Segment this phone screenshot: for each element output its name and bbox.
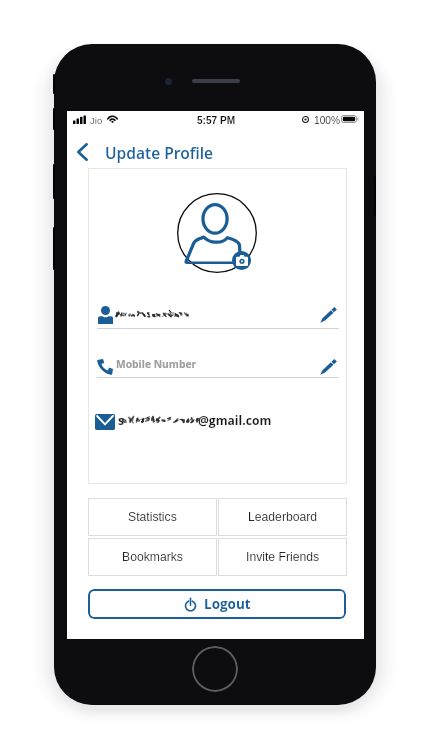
button[interactable]: Bookmarks bbox=[88, 538, 217, 576]
staticText: Logout bbox=[204, 595, 251, 613]
staticText: Jio bbox=[90, 115, 103, 126]
button[interactable]: Change profile photo bbox=[232, 251, 251, 270]
staticText: Leaderboard bbox=[248, 510, 318, 524]
button[interactable]: Back bbox=[69, 138, 95, 165]
button[interactable]: Edit bbox=[317, 355, 340, 378]
staticText: s bbox=[118, 412, 125, 428]
staticText: 100% bbox=[314, 115, 341, 126]
staticText: Bookmarks bbox=[122, 550, 183, 564]
staticText: 5:57 PM bbox=[197, 115, 236, 126]
staticText: Mobile Number bbox=[116, 357, 197, 371]
staticText: Update Profile bbox=[105, 142, 214, 163]
button[interactable]: Invite Friends bbox=[218, 538, 347, 576]
staticText: @gmail.com bbox=[198, 412, 272, 428]
button[interactable]: Leaderboard bbox=[218, 498, 347, 536]
button[interactable]: Logout bbox=[88, 589, 346, 619]
button[interactable]: Statistics bbox=[88, 498, 217, 536]
button[interactable] bbox=[96, 300, 339, 330]
button[interactable]: Edit bbox=[317, 303, 340, 326]
button[interactable] bbox=[96, 408, 339, 438]
staticText: Invite Friends bbox=[246, 550, 320, 564]
staticText: Statistics bbox=[128, 510, 177, 524]
button[interactable] bbox=[96, 352, 339, 382]
